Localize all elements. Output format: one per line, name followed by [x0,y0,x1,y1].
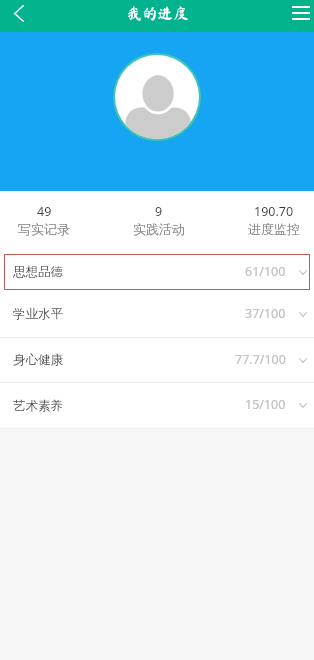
staticText: 9 [155,203,163,220]
button[interactable]: 艺术素养 [0,383,314,428]
staticText: 我的进度 [126,5,189,21]
staticText: 77.7/100 [235,351,286,368]
button[interactable]: 思想品德 [4,254,310,290]
button[interactable]: 学业水平 [0,291,314,337]
button[interactable]: 身心健康 [0,338,314,382]
button[interactable]: Back [0,0,32,32]
staticText: 学业水平 [13,306,63,322]
staticText: 190.70 [254,203,294,220]
staticText: 37/100 [245,305,286,322]
button[interactable]: 49 [18,191,70,237]
staticText: 15/100 [245,396,286,413]
staticText: 61/100 [245,263,286,280]
staticText: 思想品德 [13,264,63,280]
staticText: 实践活动 [133,221,185,237]
button[interactable]: Avatar [115,55,199,139]
button[interactable]: 9 [133,191,185,237]
staticText: 进度监控 [248,221,300,237]
staticText: 写实记录 [18,221,70,237]
staticText: 49 [37,203,52,220]
staticText: 艺术素养 [13,398,63,414]
button[interactable]: 190.70 [248,191,300,237]
staticText: 身心健康 [13,352,63,368]
button[interactable]: Menu [282,0,314,32]
